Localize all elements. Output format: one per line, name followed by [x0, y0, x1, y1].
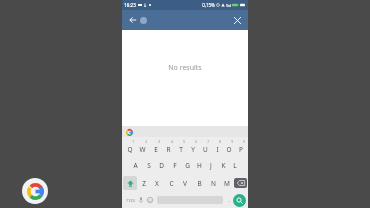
- staticText: T: [179, 145, 183, 154]
- staticText: 6: [195, 140, 197, 144]
- button[interactable]: K: [217, 156, 229, 174]
- staticText: Z: [142, 179, 146, 188]
- button[interactable]: Account: [140, 17, 147, 24]
- staticText: E: [154, 145, 158, 154]
- staticText: F: [173, 161, 177, 170]
- button[interactable]: J: [205, 156, 217, 174]
- staticText: O: [226, 145, 232, 154]
- staticText: 3: [158, 140, 160, 144]
- button[interactable]: C: [164, 174, 178, 192]
- button[interactable]: Backspace: [234, 178, 247, 188]
- button[interactable]: Voice input: [136, 192, 145, 208]
- staticText: W: [139, 145, 146, 154]
- staticText: 2: [145, 140, 147, 144]
- staticText: R: [166, 145, 171, 154]
- button[interactable]: N: [206, 174, 220, 192]
- button[interactable]: 1: [123, 138, 136, 156]
- staticText: No results: [168, 63, 202, 73]
- staticText: Y: [191, 145, 195, 154]
- staticText: 4: [171, 140, 173, 144]
- staticText: 9: [231, 140, 233, 144]
- button[interactable]: F: [168, 156, 181, 174]
- button[interactable]: 4: [162, 138, 175, 156]
- button[interactable]: Back: [126, 13, 140, 27]
- button[interactable]: 3: [149, 138, 162, 156]
- button[interactable]: D: [155, 156, 168, 174]
- staticText: ?123: [126, 198, 135, 203]
- staticText: P: [239, 145, 243, 154]
- button[interactable]: A: [129, 156, 142, 174]
- button[interactable]: 9: [223, 138, 235, 156]
- button[interactable]: S: [142, 156, 155, 174]
- button[interactable]: Shift: [123, 176, 137, 190]
- staticText: M: [224, 179, 230, 188]
- button[interactable]: H: [193, 156, 205, 174]
- staticText: H: [197, 161, 202, 170]
- staticText: 1: [132, 140, 134, 144]
- button[interactable]: Google Search: [125, 128, 133, 136]
- staticText: 0: [243, 140, 245, 144]
- button[interactable]: L: [229, 156, 241, 174]
- staticText: S: [147, 161, 151, 170]
- staticText: V: [183, 179, 187, 188]
- button[interactable]: B: [192, 174, 206, 192]
- staticText: N: [211, 179, 216, 188]
- staticText: 16:23: [124, 2, 136, 8]
- staticText: B: [197, 179, 202, 188]
- staticText: D: [159, 161, 164, 170]
- staticText: 7: [207, 140, 209, 144]
- button[interactable]: 2: [136, 138, 149, 156]
- staticText: 5: [183, 140, 185, 144]
- staticText: 0,15%: [202, 2, 215, 8]
- staticText: X: [155, 179, 159, 188]
- staticText: L: [233, 161, 237, 170]
- button[interactable]: X: [150, 174, 164, 192]
- staticText: I: [216, 145, 219, 154]
- button[interactable]: 5: [175, 138, 187, 156]
- staticText: 8: [219, 140, 221, 144]
- staticText: J: [210, 161, 212, 170]
- button[interactable]: .: [225, 192, 233, 208]
- staticText: Q: [127, 145, 133, 154]
- staticText: U: [203, 145, 208, 154]
- staticText: A: [133, 161, 138, 170]
- button[interactable]: Emoji: [145, 192, 155, 208]
- button[interactable]: 6: [187, 138, 199, 156]
- staticText: .: [228, 196, 230, 204]
- button[interactable]: 7: [199, 138, 211, 156]
- button[interactable]: G: [181, 156, 193, 174]
- button[interactable]: ?123: [124, 192, 136, 208]
- button[interactable]: Close: [230, 13, 244, 27]
- button[interactable]: 8: [211, 138, 223, 156]
- staticText: G: [185, 161, 190, 170]
- button[interactable]: 0: [235, 138, 247, 156]
- button[interactable]: Search: [233, 194, 246, 207]
- button[interactable]: V: [178, 174, 192, 192]
- staticText: K: [221, 161, 226, 170]
- staticText: 5d: [226, 3, 231, 8]
- staticText: C: [169, 179, 174, 188]
- button[interactable]: Z: [137, 174, 150, 192]
- button[interactable]: M: [220, 174, 234, 192]
